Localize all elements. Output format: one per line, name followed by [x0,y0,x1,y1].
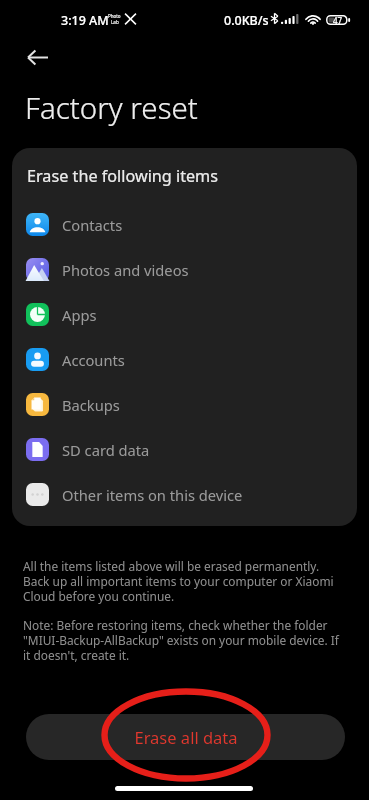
button[interactable]: Apps [12,292,357,337]
staticText: Lab [111,19,119,25]
staticText: Apps [62,305,97,325]
staticText: 47 [333,15,343,25]
button[interactable]: Photos and videos [12,247,357,292]
button[interactable]: Contacts [12,202,357,247]
staticText: Erase the following items [27,165,219,187]
staticText: Other items on this device [62,485,243,505]
staticText: All the items listed above will be erase… [23,558,344,604]
staticText: Factory reset [25,87,198,127]
staticText: Note: Before restoring items, check whet… [23,617,344,663]
staticText: Photo [108,13,121,19]
staticText: 3:19 AM [61,12,109,29]
staticText: SD card data [62,440,150,460]
button[interactable]: Accounts [12,337,357,382]
button[interactable]: SD card data [12,427,357,472]
staticText: Accounts [62,350,125,370]
button[interactable]: Erase all data [26,714,345,760]
staticText: Erase all data [134,726,238,748]
staticText: 0.0KB/s [224,12,269,29]
button[interactable]: Other items on this device [12,472,357,517]
button[interactable]: Back [20,40,54,74]
staticText: Backups [62,395,120,415]
staticText: Photos and videos [62,260,189,280]
staticText: Contacts [62,215,123,235]
button[interactable]: Backups [12,382,357,427]
